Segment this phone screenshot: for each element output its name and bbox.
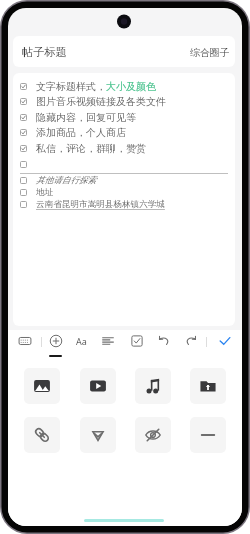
button[interactable]: 云南省昆明市嵩明县杨林镇六学城	[20, 198, 165, 210]
button[interactable]: Undo	[156, 333, 172, 349]
staticText: 隐藏内容，回复可见等	[36, 111, 136, 123]
button[interactable]: 私信，评论，群聊，赞赏	[20, 142, 146, 154]
button[interactable]: 图片音乐视频链接及各类文件	[20, 95, 166, 107]
button[interactable]: 文字标题样式，	[20, 80, 156, 92]
button[interactable]: Music	[135, 368, 171, 404]
staticText: 地址	[36, 187, 54, 198]
button[interactable]: 帖子标题	[13, 36, 235, 67]
button[interactable]: Redo	[183, 333, 199, 349]
button[interactable]: Image	[24, 368, 60, 404]
staticText: 图片音乐视频链接及各类文件	[36, 95, 166, 107]
button[interactable]	[20, 158, 36, 170]
button[interactable]: Link	[24, 417, 60, 453]
staticText: 综合圈子	[190, 46, 230, 58]
button[interactable]: 其他请自行探索	[20, 174, 97, 186]
staticText: 文字标题样式，	[36, 80, 106, 92]
button[interactable]: Video	[80, 368, 116, 404]
button[interactable]: Aa	[73, 333, 89, 349]
button[interactable]: Align	[100, 333, 116, 349]
button[interactable]: Hide	[135, 417, 171, 453]
staticText: 其他请自行探索	[36, 175, 97, 186]
staticText: Aa	[76, 335, 87, 347]
staticText: 添加商品，个人商店	[36, 126, 126, 138]
button[interactable]: Add	[48, 333, 64, 349]
button[interactable]: Keyboard	[17, 333, 33, 349]
staticText: 私信，评论，群聊，赞赏	[36, 142, 146, 154]
button[interactable]: 隐藏内容，回复可见等	[20, 111, 136, 123]
staticText: 帖子标题	[22, 45, 67, 59]
button[interactable]: Divider	[190, 417, 226, 453]
button[interactable]: 地址	[20, 186, 54, 198]
staticText: 大小及颜色	[106, 80, 156, 92]
button[interactable]: Checklist	[129, 333, 145, 349]
staticText: 云南省昆明市嵩明县杨林镇六学城	[36, 199, 165, 210]
button[interactable]: 添加商品，个人商店	[20, 126, 126, 138]
button[interactable]: Confirm	[217, 333, 233, 349]
button[interactable]: Gem	[80, 417, 116, 453]
button[interactable]: File	[190, 368, 226, 404]
